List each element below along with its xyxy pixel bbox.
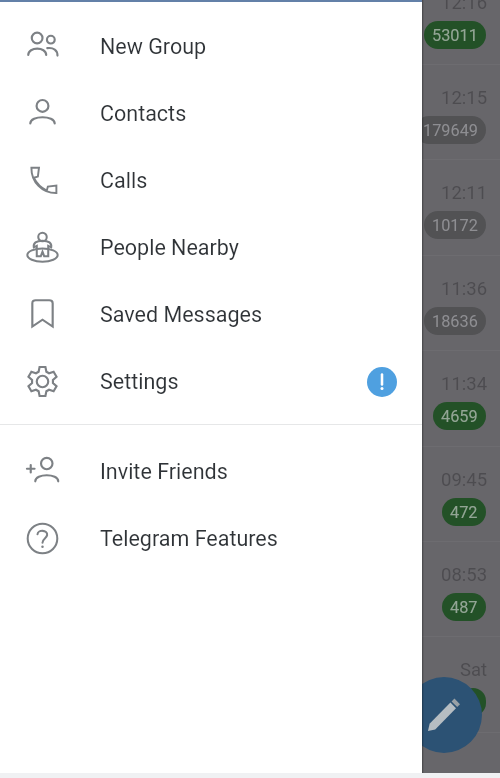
button[interactable]: Contacts	[0, 80, 422, 147]
button[interactable]: Settings	[0, 348, 422, 415]
staticText: 18636	[432, 312, 478, 331]
staticText: 179649	[423, 121, 478, 140]
staticText: Settings	[100, 369, 179, 394]
staticText: 09:45	[441, 469, 488, 491]
staticText: Calls	[100, 168, 148, 193]
staticText: Saved Messages	[100, 302, 263, 327]
staticText: 11:36	[441, 278, 488, 300]
staticText: 53011	[432, 26, 478, 45]
staticText: 487	[450, 598, 478, 617]
button[interactable]: Calls	[0, 147, 422, 214]
staticText: 12:16	[441, 0, 488, 14]
button[interactable]: New message	[406, 677, 482, 753]
staticText: Sat	[460, 659, 488, 681]
staticText: 11:34	[441, 373, 488, 395]
staticText: 10172	[432, 216, 478, 235]
staticText: 08:53	[441, 564, 488, 586]
staticText: New Group	[100, 34, 207, 59]
staticText: 4659	[441, 407, 478, 426]
staticText: 12:11	[441, 182, 488, 204]
staticText: People Nearby	[100, 235, 239, 260]
staticText: Contacts	[100, 101, 187, 126]
staticText: 9	[468, 693, 478, 712]
staticText: Invite Friends	[100, 459, 228, 484]
button[interactable]: New Group	[0, 13, 422, 80]
staticText: Telegram Features	[100, 526, 278, 551]
button[interactable]: Invite Friends	[0, 438, 422, 505]
staticText: 12:15	[441, 87, 488, 109]
button[interactable]: Saved Messages	[0, 281, 422, 348]
button[interactable]: Telegram Features	[0, 505, 422, 572]
button[interactable]: People Nearby	[0, 214, 422, 281]
staticText: 472	[450, 503, 478, 522]
